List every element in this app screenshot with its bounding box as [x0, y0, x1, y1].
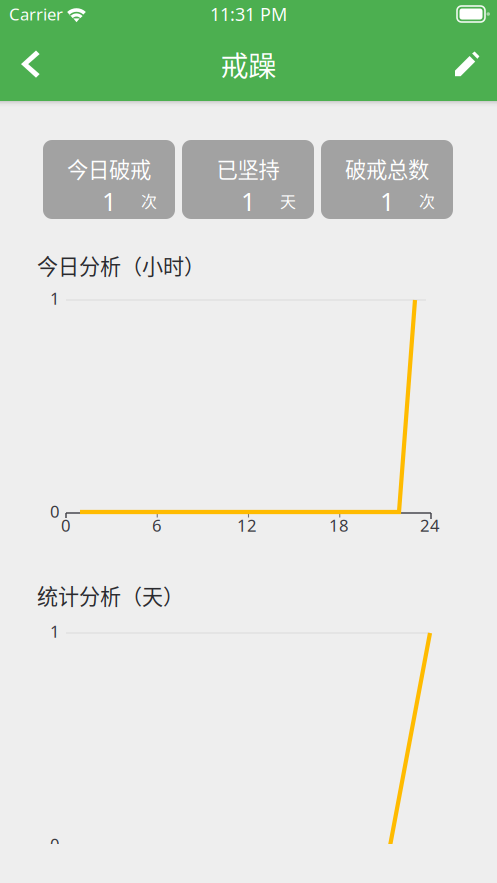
staticText: 11:31 PM — [210, 2, 287, 26]
staticText: 今日分析（小时） — [37, 250, 205, 280]
staticText: Carrier — [9, 3, 63, 25]
staticText: 次 — [419, 189, 435, 212]
button[interactable]: 今日破戒 — [43, 140, 175, 219]
staticText: 今日破戒 — [67, 153, 151, 184]
button[interactable]: Back — [0, 37, 54, 91]
button[interactable]: Edit — [441, 39, 497, 90]
staticText: 戒躁 — [220, 44, 276, 85]
staticText: 24 — [420, 514, 440, 537]
staticText: 已坚持 — [216, 153, 279, 184]
staticText: 天 — [280, 189, 296, 212]
staticText: 0 — [50, 500, 60, 523]
button[interactable]: 已坚持 — [182, 140, 314, 219]
staticText: 1 — [50, 620, 60, 643]
staticText: 1 — [241, 184, 255, 218]
staticText: 0 — [50, 833, 60, 856]
staticText: 6 — [152, 514, 162, 537]
staticText: 1 — [380, 184, 394, 218]
staticText: 1 — [102, 184, 116, 218]
staticText: 12 — [237, 514, 257, 537]
button[interactable]: 破戒总数 — [321, 140, 453, 219]
staticText: 统计分析（天） — [37, 580, 184, 610]
staticText: 1 — [50, 287, 60, 310]
staticText: 18 — [329, 514, 349, 537]
staticText: 0 — [61, 514, 71, 537]
staticText: 次 — [141, 189, 157, 212]
staticText: 破戒总数 — [345, 153, 429, 184]
